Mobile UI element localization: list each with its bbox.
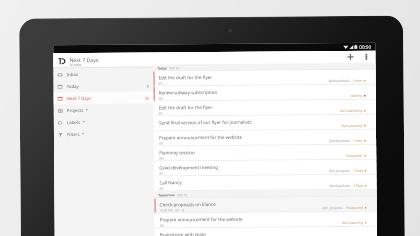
staticText: Call Nancy	[159, 179, 182, 185]
staticText: Start planning	[341, 124, 363, 128]
staticText: @delayedtask	[329, 79, 350, 83]
staticText: Waiting	[351, 94, 363, 98]
staticText: 1 hour	[353, 139, 363, 143]
button[interactable]: Next 7 Days	[54, 91, 154, 104]
staticText: Inbox	[66, 71, 78, 77]
staticText: Planning session	[159, 149, 195, 155]
button[interactable]: Gviat development meeting	[154, 160, 376, 176]
button[interactable]: Next 7 Days	[53, 52, 153, 67]
staticText: Gviat development meeting	[159, 164, 218, 170]
staticText: @1	[159, 111, 164, 115]
button[interactable]: Add task	[344, 51, 356, 63]
staticText: Send final version of our flyer for jour…	[159, 119, 252, 125]
staticText: 8	[147, 83, 150, 88]
staticText: 14:30 AM @1 %	[160, 208, 185, 212]
staticText: Next 7 Days	[69, 56, 98, 63]
button[interactable]: Planning session	[154, 145, 376, 161]
button[interactable]: Brainstorm with team	[155, 227, 377, 236]
button[interactable]: Renew subway subscription	[154, 85, 376, 101]
staticText: @2	[159, 96, 164, 100]
staticText: Filters	[67, 131, 80, 137]
staticText: @delayedtask	[329, 139, 350, 143]
staticText: Labels	[67, 119, 81, 125]
staticText: Prepare announcement for the website	[159, 134, 242, 140]
button[interactable]: Today	[54, 79, 154, 92]
staticText: Today	[157, 66, 167, 70]
staticText: Check proposals on Elance	[159, 201, 216, 207]
staticText: Next 7 Days	[67, 95, 92, 101]
staticText: Postponed	[347, 206, 364, 210]
staticText: Oct 12	[169, 66, 179, 70]
staticText: @1	[159, 171, 164, 175]
staticText: @in_progress	[323, 206, 344, 210]
staticText: @delayedtask	[329, 184, 350, 188]
button[interactable]: Prepare announcement for the website	[155, 212, 377, 228]
button[interactable]: Send final version of our flyer for jour…	[154, 115, 376, 131]
staticText: 2 Days	[353, 169, 363, 173]
button[interactable]: Prepare announcement for the website	[154, 130, 376, 146]
button[interactable]: Inbox	[53, 67, 154, 80]
staticText: 2 Days	[353, 184, 363, 188]
button[interactable]: Edit the draft for the flyer	[153, 70, 376, 86]
staticText: @in_progress	[329, 169, 350, 173]
staticText: 26 tasks	[69, 63, 82, 67]
staticText: @1	[159, 141, 164, 145]
staticText: Start planning	[342, 221, 364, 225]
staticText: @1	[159, 81, 164, 85]
button[interactable]: Filters	[54, 127, 154, 140]
staticText: 26	[145, 95, 150, 100]
staticText: Postponed	[346, 154, 363, 158]
button[interactable]: Check proposals on Elance	[154, 197, 377, 213]
staticText: Tomorrow	[158, 193, 175, 197]
staticText: Renew subway subscription	[159, 89, 218, 95]
staticText: Prepare announcement for the website	[160, 216, 243, 222]
staticText: Not submitting	[340, 109, 363, 113]
staticText: Today	[67, 83, 80, 89]
button[interactable]: Labels	[54, 115, 154, 128]
staticText: @1	[159, 186, 164, 190]
staticText: @2	[159, 156, 164, 160]
button[interactable]: Edit the draft for the flyer	[154, 100, 376, 116]
staticText: Edit the draft for the flyer	[159, 104, 213, 110]
staticText: Oct 13	[177, 193, 187, 197]
staticText: Projects	[67, 107, 84, 113]
staticText: @2	[160, 223, 165, 227]
staticText: 00:50	[359, 44, 371, 50]
staticText: Edit the draft for the flyer	[158, 74, 212, 80]
staticText: Brainstorm with team	[160, 231, 207, 236]
button[interactable]: Call Nancy	[154, 175, 376, 191]
button[interactable]: More options	[360, 51, 372, 63]
staticText: 1 hour	[353, 79, 363, 83]
button[interactable]: Projects	[54, 103, 154, 116]
